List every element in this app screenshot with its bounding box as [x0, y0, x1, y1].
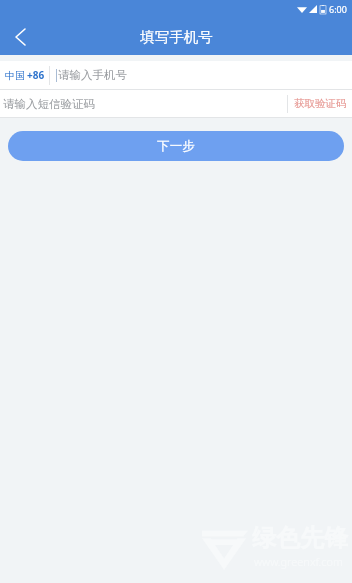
staticText: 请输入手机号 [58, 68, 127, 82]
button[interactable]: Back [0, 18, 40, 55]
staticText: +86 [27, 68, 45, 82]
button[interactable]: 下一步 [8, 131, 344, 161]
button[interactable]: 获取验证码 [288, 90, 352, 117]
staticText: 请输入短信验证码 [3, 97, 95, 111]
button[interactable]: 请输入手机号 [50, 61, 352, 89]
staticText: 填写手机号 [140, 28, 213, 46]
staticText: 下一步 [157, 138, 195, 154]
button[interactable]: 中国 [0, 61, 49, 89]
staticText: 获取验证码 [294, 97, 347, 110]
staticText: 中国 [5, 69, 25, 82]
staticText: 6:00 [329, 3, 347, 15]
button[interactable]: 请输入短信验证码 [0, 90, 287, 117]
